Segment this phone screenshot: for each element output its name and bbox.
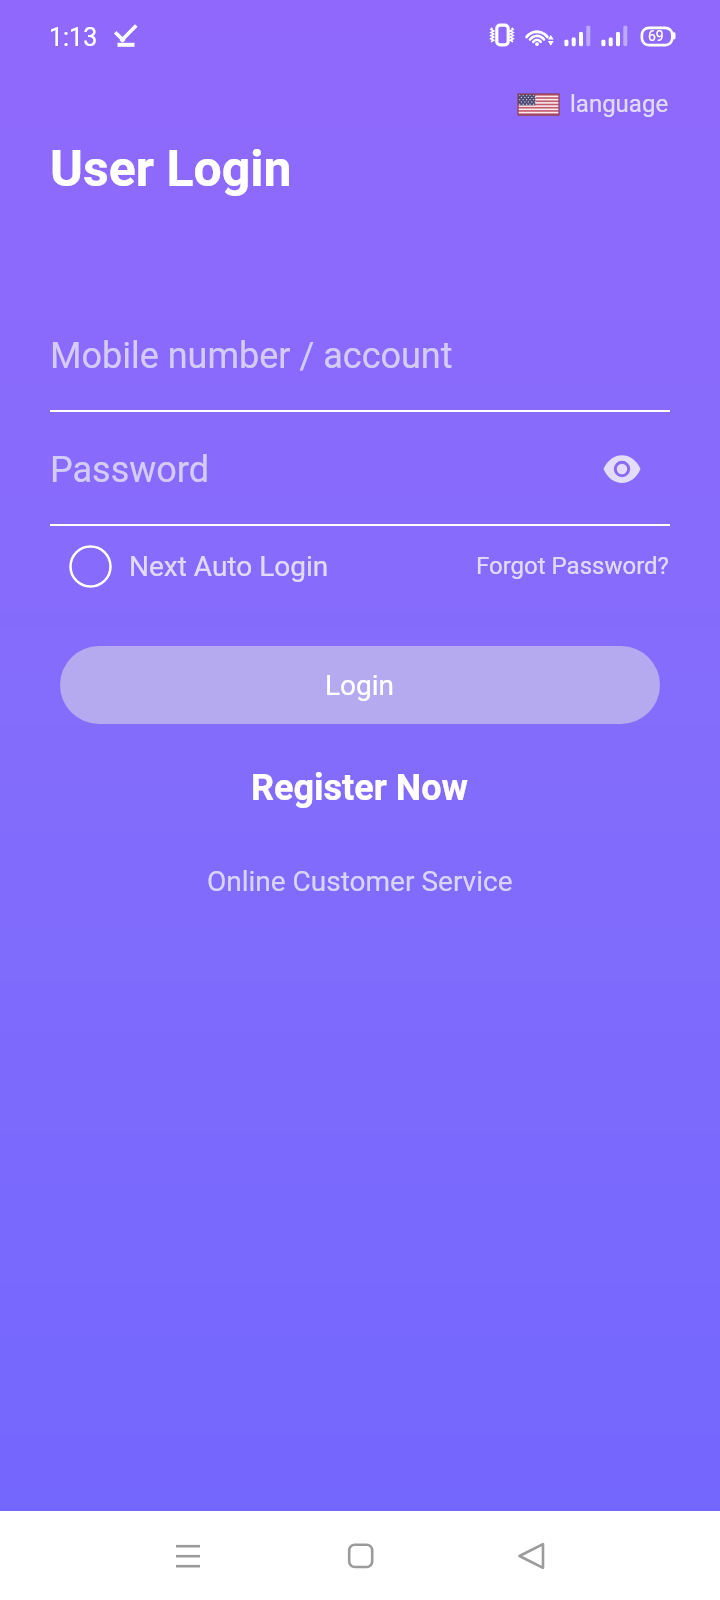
button[interactable] (50, 449, 670, 526)
staticText: 69 (648, 28, 664, 44)
staticText: User Login (50, 140, 292, 199)
button[interactable]: Mobile number / account (50, 335, 670, 412)
button[interactable]: Forgot Password? (467, 546, 678, 586)
button[interactable]: Back (470, 1511, 590, 1600)
staticText: Password (50, 449, 210, 491)
button[interactable]: Register Now (237, 759, 483, 817)
staticText: Forgot Password? (476, 552, 669, 580)
button[interactable]: Login (60, 646, 660, 724)
button[interactable]: Home (300, 1511, 420, 1600)
button[interactable]: Online Customer Service (193, 857, 527, 906)
staticText: Online Customer Service (207, 865, 513, 898)
button[interactable]: Show password (594, 441, 650, 497)
staticText: 1:13 (49, 23, 98, 52)
staticText: language (570, 90, 669, 118)
staticText: Register Now (251, 767, 469, 809)
staticText: Login (325, 669, 395, 702)
staticText: Next Auto Login (129, 550, 329, 583)
button[interactable]: Recent apps (128, 1511, 248, 1600)
button[interactable]: Next Auto Login (59, 541, 339, 592)
staticText: Mobile number / account (50, 335, 453, 377)
button[interactable]: language (508, 84, 679, 124)
